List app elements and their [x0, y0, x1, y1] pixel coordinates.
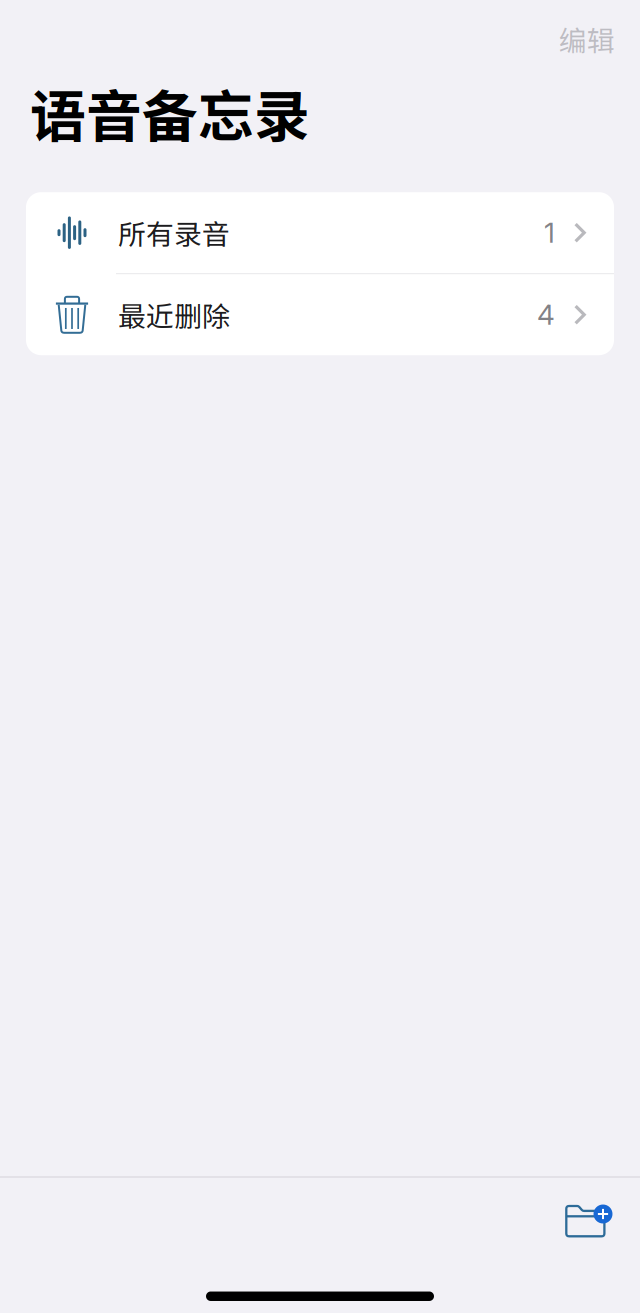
staticText: 语音备忘录	[30, 72, 310, 153]
button[interactable]: 最近删除	[26, 274, 614, 355]
staticText: 所有录音	[118, 212, 230, 253]
staticText: 编辑	[559, 19, 615, 59]
button[interactable]: New Folder	[553, 1195, 625, 1247]
staticText: 4	[537, 298, 555, 332]
staticText: 最近删除	[118, 294, 230, 335]
button[interactable]: 所有录音	[26, 192, 614, 273]
staticText: 1	[544, 216, 555, 250]
button[interactable]: 编辑	[549, 11, 625, 67]
